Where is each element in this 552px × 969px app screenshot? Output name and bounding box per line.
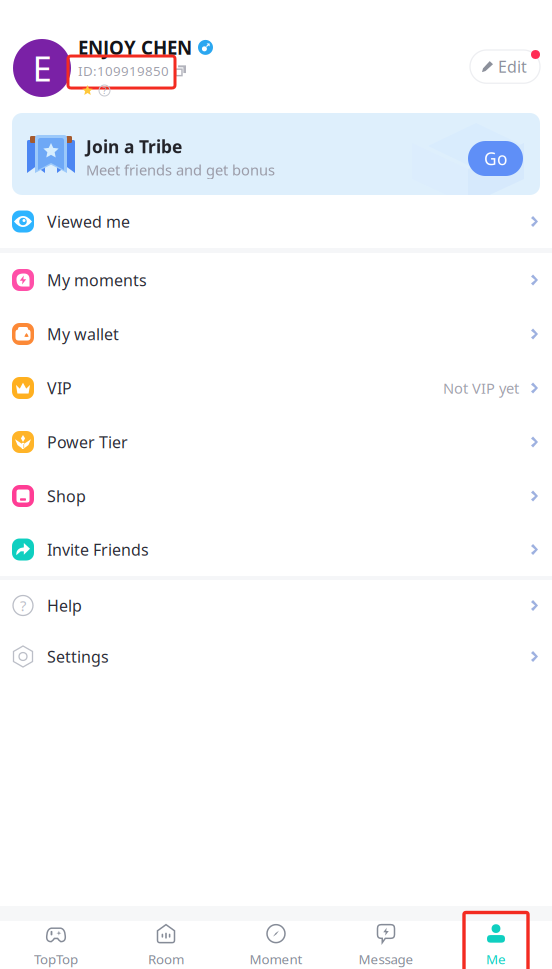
staticText: Help xyxy=(47,595,82,616)
button[interactable]: Room xyxy=(111,921,221,969)
staticText: ENJOY CHEN xyxy=(78,35,192,60)
staticText: Message xyxy=(358,950,413,968)
staticText: Me xyxy=(486,950,506,968)
button[interactable]: Viewed me xyxy=(0,195,552,248)
staticText: Power Tier xyxy=(47,431,128,453)
staticText: Invite Friends xyxy=(47,539,149,560)
staticText: Shop xyxy=(47,485,86,507)
staticText: Viewed me xyxy=(47,211,130,232)
staticText: Meet friends and get bonus xyxy=(86,160,275,179)
staticText: ID:109919850 xyxy=(78,62,169,80)
staticText: Edit xyxy=(498,56,527,77)
staticText: Room xyxy=(148,950,184,968)
button[interactable]: Edit xyxy=(470,50,540,83)
button[interactable]: ? xyxy=(0,580,552,631)
button[interactable]: TopTop xyxy=(1,921,111,969)
staticText: E xyxy=(32,45,51,91)
button[interactable]: Power Tier xyxy=(0,415,552,469)
staticText: My moments xyxy=(47,269,147,291)
staticText: Go xyxy=(484,147,507,170)
button[interactable]: Shop xyxy=(0,469,552,523)
button[interactable]: Message xyxy=(331,921,441,969)
staticText: Settings xyxy=(47,646,109,667)
staticText: My wallet xyxy=(47,323,119,345)
staticText: Not VIP yet xyxy=(443,378,519,398)
staticText: ? xyxy=(102,84,106,97)
staticText: VIP xyxy=(47,377,72,399)
staticText: Join a Tribe xyxy=(86,135,182,158)
staticText: TopTop xyxy=(34,950,78,968)
button[interactable]: VIP xyxy=(0,361,552,415)
staticText: ? xyxy=(20,596,26,615)
button[interactable]: Join a Tribe xyxy=(12,113,540,195)
button[interactable]: Me xyxy=(441,921,551,969)
button[interactable]: Settings xyxy=(0,631,552,682)
button[interactable]: Invite Friends xyxy=(0,523,552,576)
button[interactable]: My wallet xyxy=(0,307,552,361)
staticText: Moment xyxy=(249,950,302,968)
button[interactable]: My moments xyxy=(0,253,552,307)
button[interactable]: Moment xyxy=(221,921,331,969)
